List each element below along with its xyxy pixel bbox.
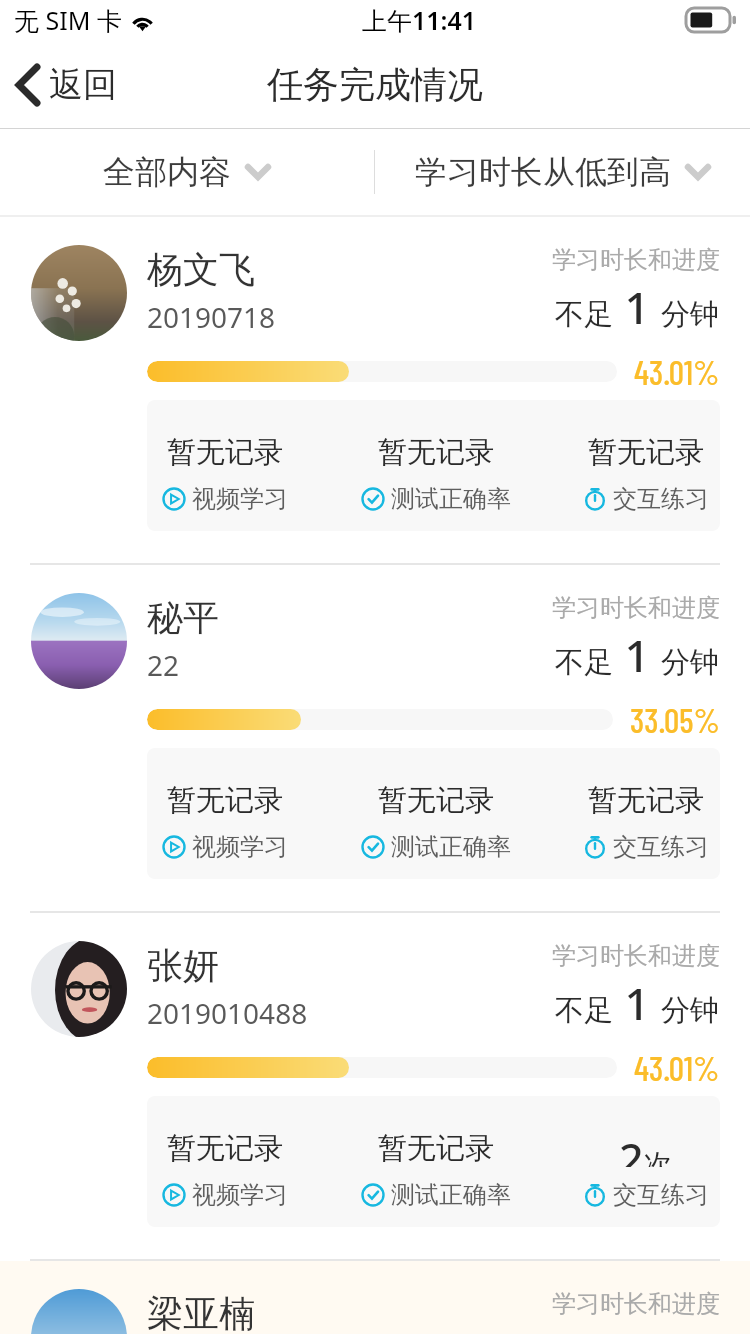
- staticText: 暂无记录: [378, 1130, 494, 1167]
- button[interactable]: 全部内容: [0, 129, 374, 215]
- staticText: 暂无记录: [167, 1130, 283, 1167]
- staticText: 交互练习: [613, 484, 709, 514]
- button[interactable]: 张妍: [0, 913, 750, 1259]
- staticText: 视频学习: [192, 832, 288, 862]
- staticText: 杨文飞: [147, 247, 255, 292]
- staticText: 学习时长和进度: [552, 941, 720, 971]
- staticText: 暂无记录: [167, 434, 283, 471]
- button[interactable]: 梁亚楠: [0, 1261, 750, 1334]
- staticText: 不足 1 分钟: [555, 625, 720, 685]
- staticText: 33.05%: [630, 699, 720, 740]
- staticText: 学习时长和进度: [552, 593, 720, 623]
- staticText: 2019010488: [147, 994, 308, 1032]
- staticText: 张妍: [147, 943, 219, 988]
- staticText: 不足 1 分钟: [555, 973, 720, 1033]
- staticText: 无 SIM 卡: [14, 3, 122, 37]
- button[interactable]: 秘平: [0, 565, 750, 911]
- staticText: 交互练习: [613, 832, 709, 862]
- button[interactable]: 杨文飞: [0, 217, 750, 563]
- staticText: 全部内容: [103, 152, 231, 192]
- staticText: 学习时长和进度: [552, 245, 720, 275]
- staticText: 2次: [619, 1129, 673, 1167]
- staticText: 暂无记录: [378, 782, 494, 819]
- button[interactable]: 学习时长从低到高: [375, 129, 750, 215]
- staticText: 梁亚楠: [147, 1291, 255, 1334]
- staticText: 22: [147, 646, 180, 684]
- staticText: 测试正确率: [391, 832, 511, 862]
- staticText: 上午11:41: [362, 3, 477, 37]
- staticText: 暂无记录: [167, 782, 283, 819]
- staticText: 20190718: [147, 298, 276, 336]
- staticText: 暂无记录: [588, 782, 704, 819]
- staticText: 暂无记录: [378, 434, 494, 471]
- staticText: 秘平: [147, 595, 219, 640]
- staticText: 返回: [49, 63, 117, 106]
- staticText: 任务完成情况: [267, 62, 483, 107]
- staticText: 测试正确率: [391, 484, 511, 514]
- staticText: 视频学习: [192, 1180, 288, 1210]
- staticText: 暂无记录: [588, 434, 704, 471]
- staticText: 学习时长和进度: [552, 1289, 720, 1319]
- staticText: 交互练习: [613, 1180, 709, 1210]
- staticText: 视频学习: [192, 484, 288, 514]
- staticText: 43.01%: [634, 1047, 720, 1088]
- button[interactable]: 返回: [0, 53, 133, 116]
- staticText: 43.01%: [634, 351, 720, 392]
- staticText: 不足 1 分钟: [555, 277, 720, 337]
- staticText: 测试正确率: [391, 1180, 511, 1210]
- staticText: 学习时长从低到高: [415, 152, 671, 192]
